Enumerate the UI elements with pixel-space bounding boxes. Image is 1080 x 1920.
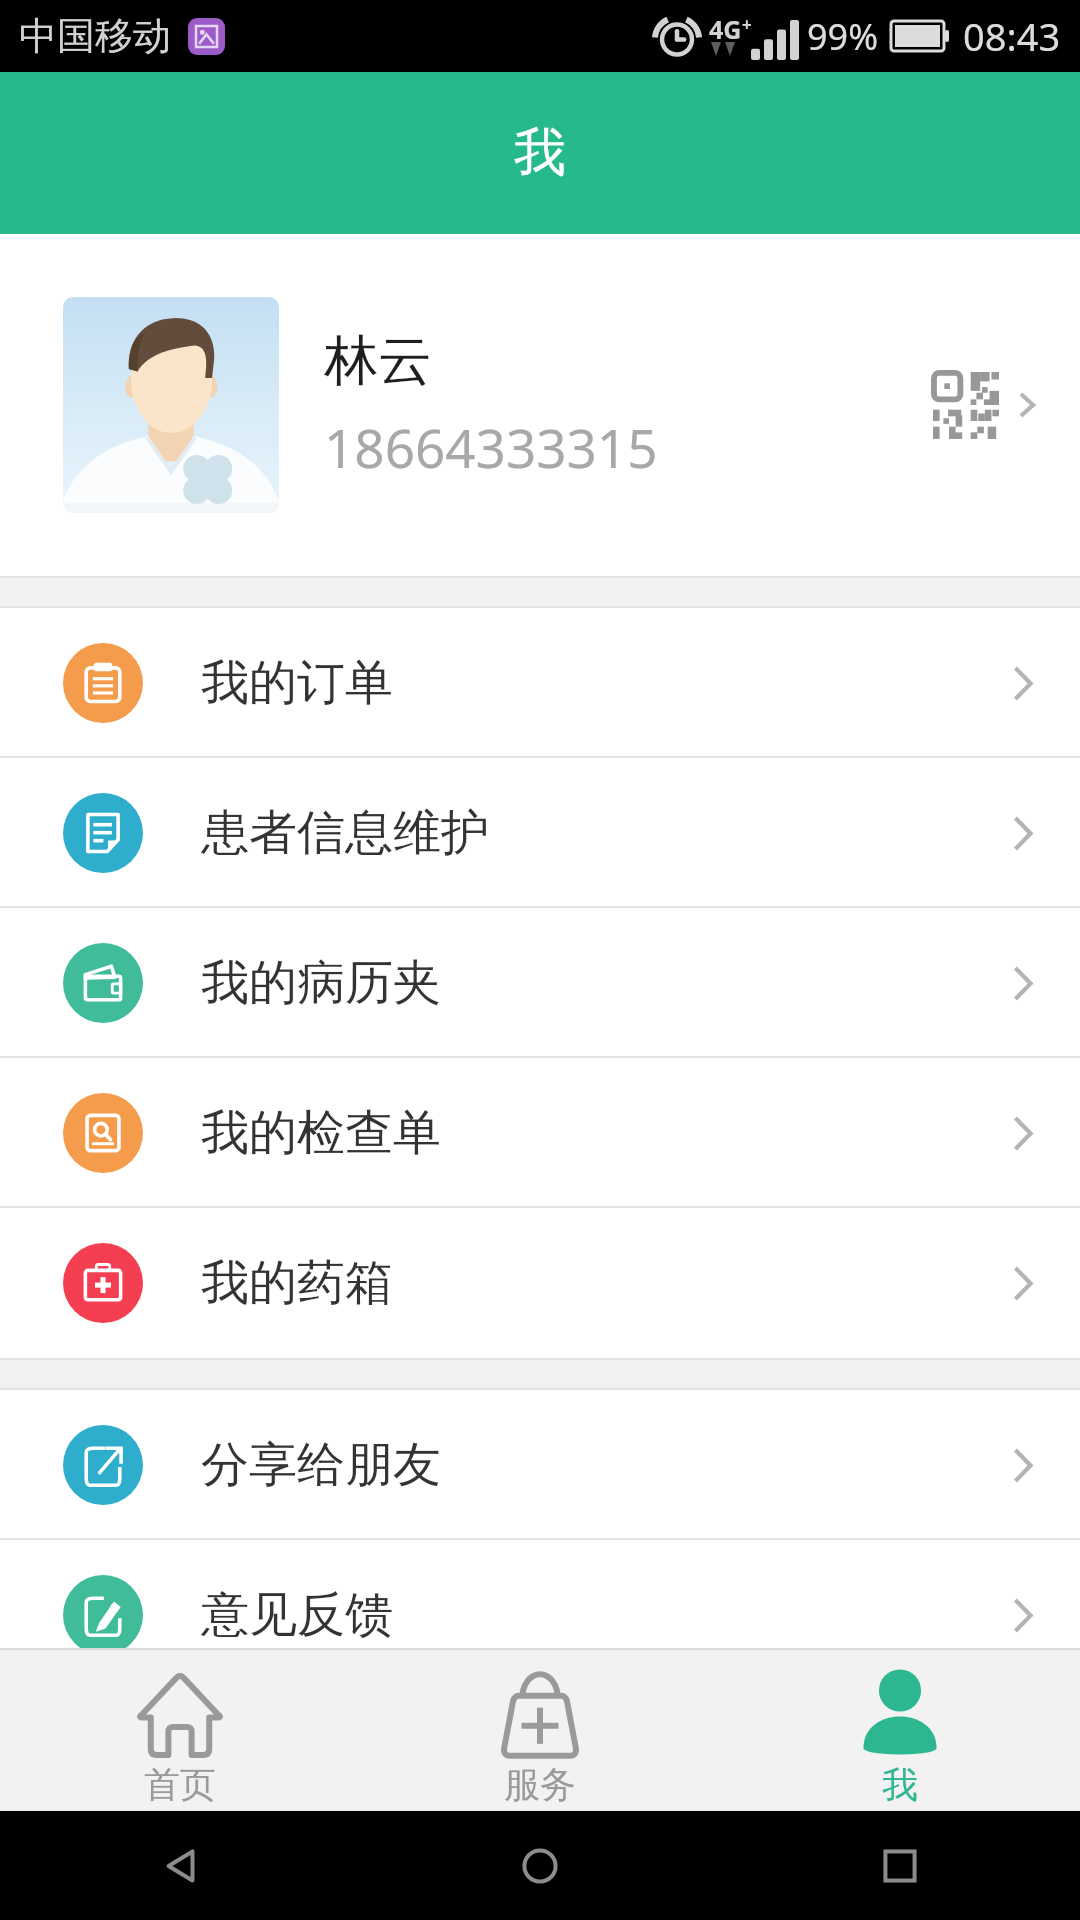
staticText: 08:43 (963, 10, 1061, 62)
button[interactable]: 服务 (360, 1650, 720, 1811)
button[interactable]: 首页 (0, 1650, 360, 1811)
staticText: 中国移动 (19, 12, 171, 60)
staticText: + (742, 13, 752, 36)
staticText: 分享给朋友 (201, 1435, 441, 1495)
staticText: 我 (514, 120, 566, 186)
button[interactable]: 患者信息维护 (0, 758, 1080, 908)
other: Recents (874, 1840, 926, 1892)
other: Home (514, 1840, 566, 1892)
staticText: 服务 (504, 1762, 576, 1807)
button[interactable]: 林云 (0, 234, 1080, 576)
staticText: 99% (807, 12, 879, 61)
button[interactable]: 我 (720, 1650, 1080, 1811)
button[interactable]: 我的订单 (0, 608, 1080, 758)
other: QR code (933, 372, 999, 438)
staticText: 18664333315 (324, 411, 658, 483)
staticText: 我 (882, 1762, 918, 1807)
staticText: 林云 (324, 327, 432, 395)
staticText: 我的药箱 (201, 1253, 393, 1313)
button[interactable]: 意见反馈 (0, 1540, 1080, 1648)
button[interactable]: 我的病历夹 (0, 908, 1080, 1058)
staticText: 意见反馈 (201, 1585, 393, 1645)
staticText: 我的病历夹 (201, 953, 441, 1013)
staticText: 4G (709, 12, 742, 46)
staticText: 患者信息维护 (201, 803, 489, 863)
other: Back (154, 1840, 206, 1892)
staticText: 我的检查单 (201, 1103, 441, 1163)
staticText: 我的订单 (201, 653, 393, 713)
button[interactable]: 我的药箱 (0, 1208, 1080, 1358)
button[interactable]: 我的检查单 (0, 1058, 1080, 1208)
button[interactable]: 分享给朋友 (0, 1390, 1080, 1540)
staticText: 首页 (144, 1762, 216, 1807)
